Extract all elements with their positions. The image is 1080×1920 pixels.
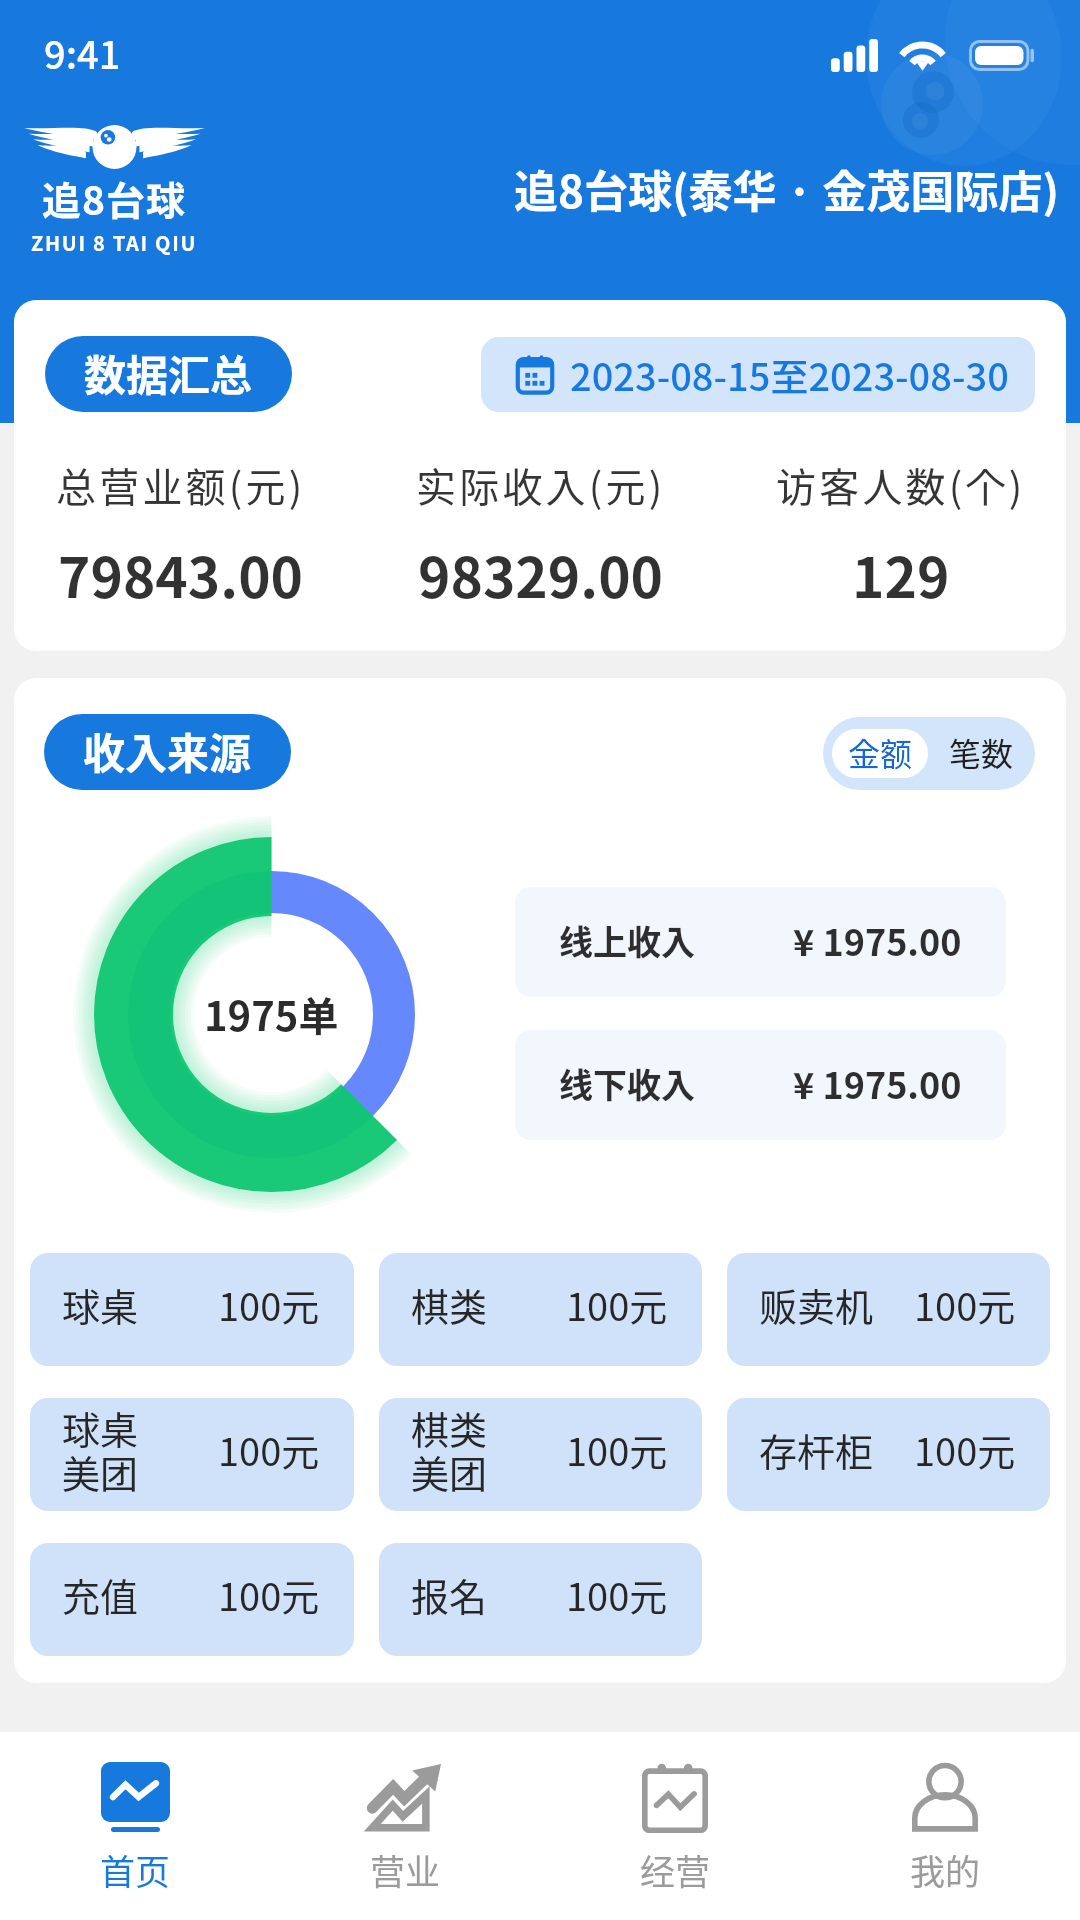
button[interactable]: 球桌 <box>30 1253 354 1366</box>
button[interactable]: 经营 <box>540 1732 810 1920</box>
staticText: 线上收入 <box>559 916 695 965</box>
staticText: 球桌 美团 <box>62 1400 139 1499</box>
staticText: 棋类 美团 <box>411 1400 488 1499</box>
staticText: 实际收入(元) <box>416 456 666 514</box>
button[interactable]: 线上收入 <box>515 887 1006 997</box>
staticText: 1975单 <box>204 985 339 1043</box>
staticText: 金额 <box>848 729 913 775</box>
staticText: 经营 <box>640 1844 711 1895</box>
staticText: 129 <box>852 534 950 614</box>
other: 营业 <box>369 1762 441 1832</box>
button[interactable]: 棋类 <box>379 1253 702 1366</box>
button[interactable]: 棋类 美团 <box>379 1398 702 1511</box>
staticText: 100元 <box>218 1277 320 1332</box>
staticText: 2023-08-15至2023-08-30 <box>570 347 1009 402</box>
other: 追8台球 logo <box>24 120 205 257</box>
staticText: ZHUI 8 TAI QIU <box>31 228 198 257</box>
staticText: 100元 <box>566 1567 668 1622</box>
staticText: 98329.00 <box>418 534 664 614</box>
staticText: 贩卖机 <box>759 1277 874 1332</box>
staticText: 球桌 <box>62 1277 139 1332</box>
staticText: 100元 <box>218 1422 320 1477</box>
button[interactable]: 线下收入 <box>515 1030 1006 1140</box>
staticText: 营业 <box>370 1844 441 1895</box>
other: 经营 <box>642 1762 708 1832</box>
staticText: ¥ 1975.00 <box>793 914 962 966</box>
staticText: 访客人数(个) <box>776 456 1026 514</box>
button[interactable]: 球桌 美团 <box>30 1398 354 1511</box>
button[interactable]: 数据汇总 <box>45 336 292 412</box>
staticText: 首页 <box>100 1844 171 1895</box>
staticText: 100元 <box>566 1277 668 1332</box>
button[interactable]: 首页 <box>0 1732 270 1920</box>
staticText: 100元 <box>914 1422 1016 1477</box>
staticText: 笔数 <box>949 729 1014 775</box>
button[interactable]: 我的 <box>810 1732 1080 1920</box>
staticText: ¥ 1975.00 <box>793 1057 962 1109</box>
button[interactable]: 金额 <box>832 729 928 778</box>
staticText: 100元 <box>914 1277 1016 1332</box>
button[interactable]: Date range <box>481 337 1035 412</box>
staticText: 100元 <box>566 1422 668 1477</box>
staticText: 我的 <box>910 1844 981 1895</box>
staticText: 总营业额(元) <box>56 456 306 514</box>
staticText: 100元 <box>218 1567 320 1622</box>
other: Date range <box>514 354 556 396</box>
button[interactable]: 充值 <box>30 1543 354 1656</box>
staticText: 追8台球 <box>42 170 187 226</box>
staticText: 数据汇总 <box>84 342 253 403</box>
staticText: 9:41 <box>44 25 121 80</box>
button[interactable]: 笔数 <box>928 729 1035 778</box>
staticText: 充值 <box>62 1567 139 1622</box>
button[interactable]: 报名 <box>379 1543 702 1656</box>
staticText: 存杆柜 <box>759 1422 874 1477</box>
staticText: 棋类 <box>411 1277 488 1332</box>
staticText: 报名 <box>411 1567 488 1622</box>
button[interactable]: 营业 <box>270 1732 540 1920</box>
button[interactable]: 存杆柜 <box>727 1398 1050 1511</box>
staticText: 追8台球(泰华 · 金茂国际店) <box>514 157 1060 221</box>
staticText: 79843.00 <box>58 534 304 614</box>
staticText: 线下收入 <box>559 1059 695 1108</box>
other: 首页 <box>101 1762 170 1832</box>
staticText: 收入来源 <box>83 720 252 781</box>
other: 我的 <box>912 1762 978 1832</box>
button[interactable]: 贩卖机 <box>727 1253 1050 1366</box>
button[interactable]: 收入来源 <box>44 714 291 790</box>
